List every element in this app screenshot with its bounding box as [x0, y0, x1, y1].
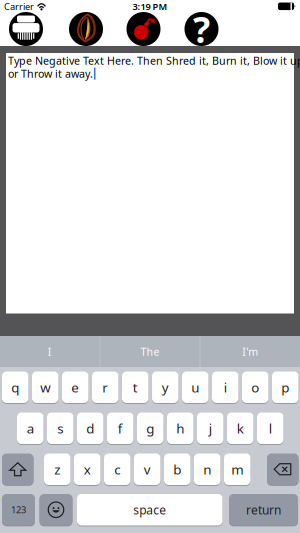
- button[interactable]: b: [164, 453, 190, 485]
- staticText: y: [162, 378, 169, 396]
- button[interactable]: g: [137, 412, 163, 444]
- staticText: Carrier: [4, 0, 34, 12]
- staticText: w: [40, 378, 50, 396]
- button[interactable]: x: [74, 453, 100, 485]
- staticText: ?: [193, 5, 210, 53]
- button[interactable]: w: [32, 371, 58, 403]
- staticText: 3:19 PM: [132, 0, 167, 12]
- button[interactable]: I: [0, 336, 99, 367]
- button[interactable]: h: [167, 412, 193, 444]
- staticText: 123: [11, 504, 26, 516]
- button[interactable]: c: [104, 453, 130, 485]
- button[interactable]: j: [197, 412, 223, 444]
- button[interactable]: m: [224, 453, 250, 485]
- staticText: I'm: [242, 344, 258, 359]
- button[interactable]: a: [17, 412, 43, 444]
- staticText: t: [133, 378, 138, 396]
- button[interactable]: s: [47, 412, 73, 444]
- button[interactable]: Shift: [2, 453, 33, 485]
- button[interactable]: o: [242, 371, 268, 403]
- staticText: v: [144, 460, 151, 478]
- staticText: c: [114, 460, 120, 478]
- button[interactable]: Return: [229, 493, 298, 526]
- button[interactable]: v: [134, 453, 160, 485]
- staticText: I: [48, 344, 52, 359]
- button[interactable]: k: [227, 412, 253, 444]
- staticText: x: [84, 460, 91, 478]
- button[interactable]: The: [100, 336, 199, 367]
- button[interactable]: Numbers: [2, 493, 35, 526]
- staticText: z: [54, 460, 60, 478]
- button[interactable]: f: [107, 412, 133, 444]
- staticText: s: [57, 419, 63, 437]
- button[interactable]: Emoji: [39, 493, 72, 526]
- staticText: Type Negative Text Here. Then Shred it, …: [8, 53, 300, 68]
- button[interactable]: Help: [184, 12, 218, 46]
- button[interactable]: l: [257, 412, 283, 444]
- button[interactable]: Blow up: [126, 12, 160, 46]
- button[interactable]: z: [44, 453, 70, 485]
- button[interactable]: Shred: [9, 12, 43, 46]
- staticText: e: [71, 378, 79, 396]
- button[interactable]: I'm: [200, 336, 300, 367]
- staticText: i: [224, 378, 227, 396]
- staticText: o: [251, 378, 259, 396]
- button[interactable]: e: [62, 371, 88, 403]
- staticText: u: [191, 378, 199, 396]
- staticText: f: [118, 419, 123, 437]
- staticText: d: [86, 419, 94, 437]
- button[interactable]: i: [212, 371, 238, 403]
- button[interactable]: space: [77, 493, 222, 526]
- staticText: p: [281, 378, 289, 396]
- button[interactable]: Burn: [69, 12, 103, 46]
- staticText: r: [102, 378, 108, 396]
- staticText: h: [176, 419, 184, 437]
- staticText: k: [237, 419, 244, 437]
- staticText: a: [27, 419, 34, 437]
- staticText: or Throw it away.: [8, 66, 93, 81]
- staticText: m: [231, 460, 243, 478]
- staticText: l: [269, 419, 272, 437]
- button[interactable]: Delete: [267, 453, 298, 485]
- staticText: j: [209, 419, 212, 437]
- button[interactable]: q: [2, 371, 28, 403]
- button[interactable]: r: [92, 371, 118, 403]
- button[interactable]: n: [194, 453, 220, 485]
- staticText: space: [133, 502, 166, 518]
- staticText: b: [173, 460, 181, 478]
- staticText: g: [146, 419, 154, 437]
- button[interactable]: y: [152, 371, 178, 403]
- button[interactable]: u: [182, 371, 208, 403]
- staticText: The: [140, 344, 159, 359]
- staticText: n: [203, 460, 211, 478]
- staticText: return: [246, 502, 281, 518]
- button[interactable]: p: [272, 371, 298, 403]
- button[interactable]: t: [122, 371, 148, 403]
- button[interactable]: d: [77, 412, 103, 444]
- staticText: q: [11, 378, 19, 396]
